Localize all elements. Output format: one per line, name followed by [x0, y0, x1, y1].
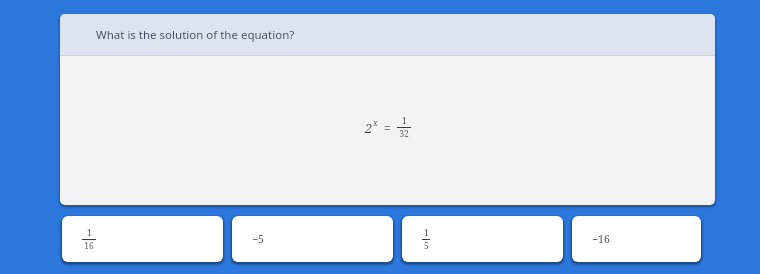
- button[interactable]: 1: [402, 216, 563, 262]
- staticText: 16: [84, 240, 94, 252]
- staticText: 5: [424, 240, 429, 252]
- staticText: x: [373, 117, 378, 129]
- staticText: =: [384, 120, 391, 136]
- button[interactable]: 1: [62, 216, 223, 262]
- staticText: 1: [402, 115, 407, 127]
- staticText: 1: [424, 227, 429, 239]
- staticText: 1: [87, 227, 92, 239]
- staticText: 32: [399, 128, 409, 140]
- staticText: What is the solution of the equation?: [96, 27, 295, 43]
- button[interactable]: −5: [232, 216, 393, 262]
- button[interactable]: −16: [572, 216, 701, 262]
- staticText: −5: [252, 232, 264, 246]
- staticText: −16: [592, 232, 610, 246]
- staticText: 2: [365, 119, 373, 137]
